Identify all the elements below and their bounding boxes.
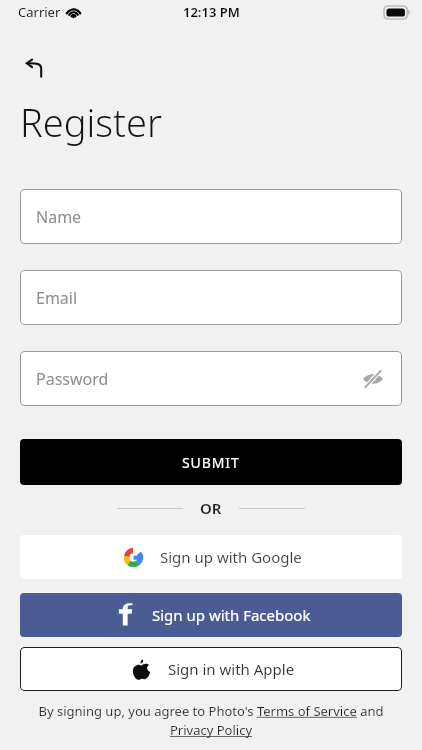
staticText: OR [200,498,222,518]
staticText: 12:13 PM [183,3,240,21]
button[interactable]: Sign up with Facebook [20,593,402,637]
staticText: SUBMIT [182,453,240,472]
staticText: Sign up with Google [160,547,302,567]
staticText: Password [36,368,109,390]
staticText: Sign in with Apple [168,659,295,679]
button[interactable]: SUBMIT [20,439,402,485]
staticText: By signing up, you agree to Photo's Term… [24,702,398,739]
button[interactable]: Sign up with Google [20,535,402,579]
button[interactable]: Back [14,50,54,90]
button[interactable]: Password [20,351,402,406]
button[interactable]: Email [20,270,402,325]
button[interactable]: Show password [358,364,388,394]
staticText: Name [36,206,82,228]
staticText: Register [20,96,162,148]
button[interactable]: Name [20,189,402,244]
staticText: Email [36,287,78,309]
staticText: Carrier [18,3,61,21]
button[interactable]: Sign in with Apple [20,647,402,691]
staticText: Sign up with Facebook [152,605,311,625]
